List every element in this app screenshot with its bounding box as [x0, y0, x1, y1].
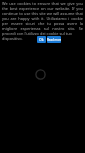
staticText: We use cookies to ensure that we give yo…	[2, 1, 83, 36]
button[interactable]: Ok	[37, 36, 46, 43]
other: Loading	[0, 0, 85, 153]
staticText: Read more	[47, 38, 61, 42]
staticText: Ok	[39, 37, 44, 42]
staticText: dispositivo.	[2, 36, 23, 41]
button[interactable]: Read more	[47, 36, 61, 43]
